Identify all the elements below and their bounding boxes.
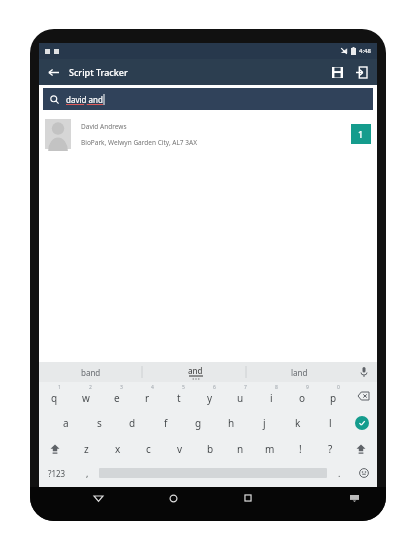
button[interactable]: ? bbox=[315, 436, 345, 462]
staticText: 4:48 bbox=[359, 47, 371, 55]
button[interactable]: 1 bbox=[39, 382, 70, 410]
staticText: m bbox=[265, 442, 275, 456]
button[interactable]: david and bbox=[43, 88, 373, 110]
staticText: 5 bbox=[182, 384, 185, 391]
staticText: , bbox=[86, 467, 89, 479]
staticText: and bbox=[188, 365, 203, 376]
button[interactable]: 5 bbox=[163, 382, 194, 410]
staticText: 8 bbox=[275, 384, 278, 391]
staticText: c bbox=[146, 442, 151, 456]
button[interactable]: Home bbox=[162, 487, 184, 509]
staticText: h bbox=[228, 416, 235, 430]
staticText: y bbox=[207, 391, 213, 405]
button[interactable]: Save bbox=[327, 62, 347, 82]
button[interactable]: z bbox=[71, 436, 102, 462]
staticText: w bbox=[82, 391, 90, 405]
button[interactable]: Back bbox=[43, 62, 63, 82]
button[interactable]: , bbox=[75, 462, 99, 484]
staticText: q bbox=[51, 391, 58, 405]
button[interactable]: 3 bbox=[101, 382, 132, 410]
staticText: r bbox=[145, 391, 150, 405]
button[interactable]: 6 bbox=[194, 382, 225, 410]
staticText: land bbox=[291, 367, 308, 378]
staticText: 1 bbox=[58, 384, 61, 391]
button[interactable]: David Andrews bbox=[39, 113, 377, 155]
staticText: 1 bbox=[358, 128, 364, 140]
button[interactable]: a bbox=[49, 410, 83, 436]
button[interactable]: Shift bbox=[345, 436, 377, 462]
button[interactable]: m bbox=[255, 436, 285, 462]
staticText: e bbox=[114, 391, 120, 405]
button[interactable]: land bbox=[247, 362, 351, 382]
staticText: l bbox=[329, 416, 332, 430]
staticText: v bbox=[177, 442, 183, 456]
button[interactable]: 4 bbox=[132, 382, 163, 410]
staticText: band bbox=[81, 367, 101, 378]
button[interactable]: 8 bbox=[256, 382, 287, 410]
staticText: BioPark, Welwyn Garden City, AL7 3AX bbox=[81, 138, 197, 147]
button[interactable]: n bbox=[225, 436, 255, 462]
staticText: s bbox=[97, 416, 102, 430]
button[interactable]: Backspace bbox=[349, 382, 377, 410]
staticText: 9 bbox=[306, 384, 309, 391]
staticText: d bbox=[129, 416, 136, 430]
button[interactable]: 0 bbox=[318, 382, 349, 410]
staticText: David Andrews bbox=[81, 122, 127, 131]
button[interactable]: g bbox=[182, 410, 215, 436]
button[interactable]: f bbox=[149, 410, 182, 436]
button[interactable]: d bbox=[116, 410, 149, 436]
button[interactable]: Enter bbox=[347, 410, 377, 436]
button[interactable]: 7 bbox=[225, 382, 256, 410]
button[interactable]: ! bbox=[285, 436, 315, 462]
staticText: x bbox=[115, 442, 121, 456]
staticText: ?123 bbox=[48, 468, 66, 479]
button[interactable]: band bbox=[39, 362, 143, 382]
staticText: z bbox=[84, 442, 89, 456]
staticText: 2 bbox=[89, 384, 92, 391]
staticText: 7 bbox=[244, 384, 247, 391]
button[interactable]: ?123 bbox=[39, 462, 75, 484]
staticText: . bbox=[338, 467, 341, 479]
button[interactable]: . bbox=[327, 462, 351, 484]
staticText: p bbox=[330, 391, 337, 405]
staticText: ? bbox=[328, 442, 333, 456]
staticText: Script Tracker bbox=[69, 66, 128, 78]
button[interactable]: x bbox=[102, 436, 133, 462]
button[interactable]: Shift bbox=[39, 436, 71, 462]
staticText: 4 bbox=[151, 384, 154, 391]
button[interactable]: Hide keyboard bbox=[343, 487, 365, 509]
staticText: a bbox=[63, 416, 69, 430]
button[interactable]: j bbox=[248, 410, 281, 436]
staticText: 6 bbox=[213, 384, 216, 391]
button[interactable]: k bbox=[281, 410, 314, 436]
button[interactable]: b bbox=[195, 436, 225, 462]
staticText: u bbox=[237, 391, 244, 405]
staticText: ! bbox=[299, 442, 302, 456]
staticText: i bbox=[270, 391, 273, 405]
button[interactable]: Back bbox=[87, 487, 109, 509]
staticText: f bbox=[164, 416, 168, 430]
staticText: b bbox=[207, 442, 214, 456]
button[interactable]: 9 bbox=[287, 382, 318, 410]
staticText: o bbox=[299, 391, 306, 405]
staticText: j bbox=[263, 416, 266, 430]
button[interactable]: v bbox=[164, 436, 195, 462]
button[interactable]: Voice input bbox=[351, 362, 377, 382]
button[interactable]: 1 bbox=[351, 124, 371, 144]
staticText: t bbox=[177, 391, 181, 405]
button[interactable]: h bbox=[215, 410, 248, 436]
button[interactable]: s bbox=[83, 410, 116, 436]
staticText: david and bbox=[66, 94, 103, 105]
staticText: n bbox=[237, 442, 244, 456]
staticText: 3 bbox=[120, 384, 123, 391]
button[interactable]: 2 bbox=[70, 382, 101, 410]
button[interactable]: Recent apps bbox=[237, 487, 259, 509]
button[interactable]: and bbox=[143, 362, 247, 382]
button[interactable]: Sign out bbox=[351, 62, 371, 82]
staticText: g bbox=[195, 416, 202, 430]
button[interactable]: Emoji bbox=[351, 462, 377, 484]
button[interactable]: c bbox=[133, 436, 164, 462]
button[interactable]: l bbox=[314, 410, 347, 436]
staticText: k bbox=[295, 416, 301, 430]
